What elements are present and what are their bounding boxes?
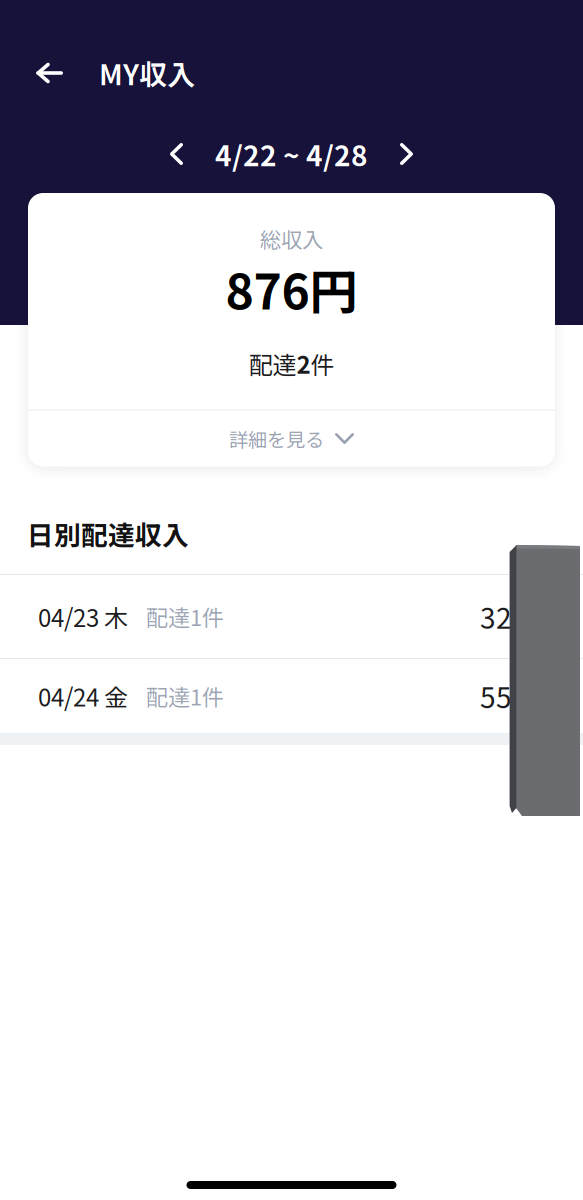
- staticText: 配達1件: [146, 601, 224, 632]
- staticText: 配達1件: [146, 680, 224, 712]
- staticText: 04/24 金: [38, 679, 128, 713]
- button[interactable]: Next week: [385, 131, 428, 177]
- staticText: 4/22 ~ 4/28: [215, 134, 368, 174]
- staticText: 配達2件: [248, 346, 334, 380]
- button[interactable]: 詳細を見る: [28, 410, 555, 466]
- button[interactable]: Back: [0, 52, 77, 94]
- staticText: 321円: [480, 596, 556, 637]
- staticText: 554円: [480, 676, 556, 716]
- button[interactable]: 04/23 木: [0, 575, 583, 659]
- button[interactable]: Previous week: [155, 131, 198, 177]
- staticText: 総収入: [260, 223, 323, 254]
- staticText: 876円: [225, 254, 357, 323]
- staticText: 日別配達収入: [27, 514, 189, 553]
- staticText: 詳細を見る: [229, 424, 324, 452]
- staticText: 04/23 木: [38, 599, 128, 634]
- button[interactable]: 04/24 金: [0, 659, 583, 733]
- staticText: MY収入: [99, 53, 195, 93]
